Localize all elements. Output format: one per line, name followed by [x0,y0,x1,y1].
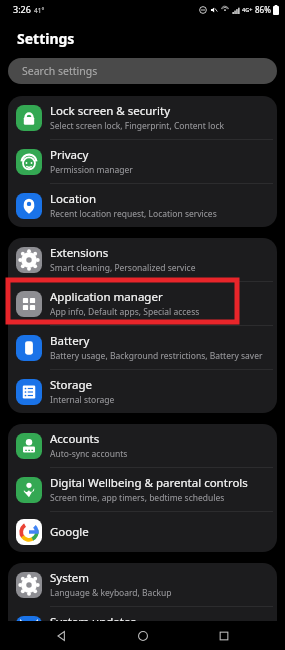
staticText: System [50,570,90,586]
staticText: Digital Wellbeing & parental controls [50,475,248,491]
staticText: 86% [255,4,271,15]
staticText: System updates [50,614,136,630]
button[interactable]: Recent apps [204,621,244,650]
button[interactable]: Google [8,512,277,552]
staticText: Storage [50,377,92,393]
staticText: Recent location request, Location servic… [50,208,217,220]
button[interactable]: Location [8,184,277,227]
staticText: Language & keyboard, Backup [50,587,172,599]
button[interactable]: Back [41,621,81,650]
staticText: App info, Default apps, Special access [50,306,200,318]
staticText: Smart cleaning, Personalized service [50,262,196,274]
staticText: Privacy [50,147,89,163]
staticText: Search settings [22,64,98,78]
button[interactable]: Storage [8,370,277,413]
button[interactable]: Search settings [8,58,277,84]
staticText: Extensions [50,245,109,261]
staticText: Auto-sync accounts [50,448,128,460]
staticText: Screen time, app timers, bedtime schedul… [50,492,225,504]
staticText: Battery usage, Background restrictions, … [50,350,263,362]
button[interactable]: Home [123,621,163,650]
button[interactable]: Accounts [8,424,277,468]
staticText: Last checked [50,631,102,643]
staticText: 41° [34,6,45,15]
button[interactable]: System [8,563,277,607]
button[interactable]: Extensions [8,238,277,282]
staticText: Settings [17,29,75,48]
button[interactable]: Lock screen & security [8,96,277,140]
button[interactable]: Application manager [8,282,277,326]
staticText: Internal storage [50,394,115,406]
button[interactable]: Privacy [8,140,277,184]
staticText: Accounts [50,431,100,447]
staticText: Location [50,191,97,207]
staticText: 4G+ [242,6,253,13]
staticText: Application manager [50,289,163,305]
staticText: Lock screen & security [50,103,171,119]
button[interactable]: Battery [8,326,277,370]
staticText: Google [50,524,89,540]
staticText: Select screen lock, Fingerprint, Content… [50,120,225,132]
staticText: Permission manager [50,164,133,176]
staticText: 3:26 [13,3,31,15]
button[interactable]: System updates [8,607,277,650]
button[interactable]: Digital Wellbeing & parental controls [8,468,277,512]
staticText: Battery [50,333,90,349]
